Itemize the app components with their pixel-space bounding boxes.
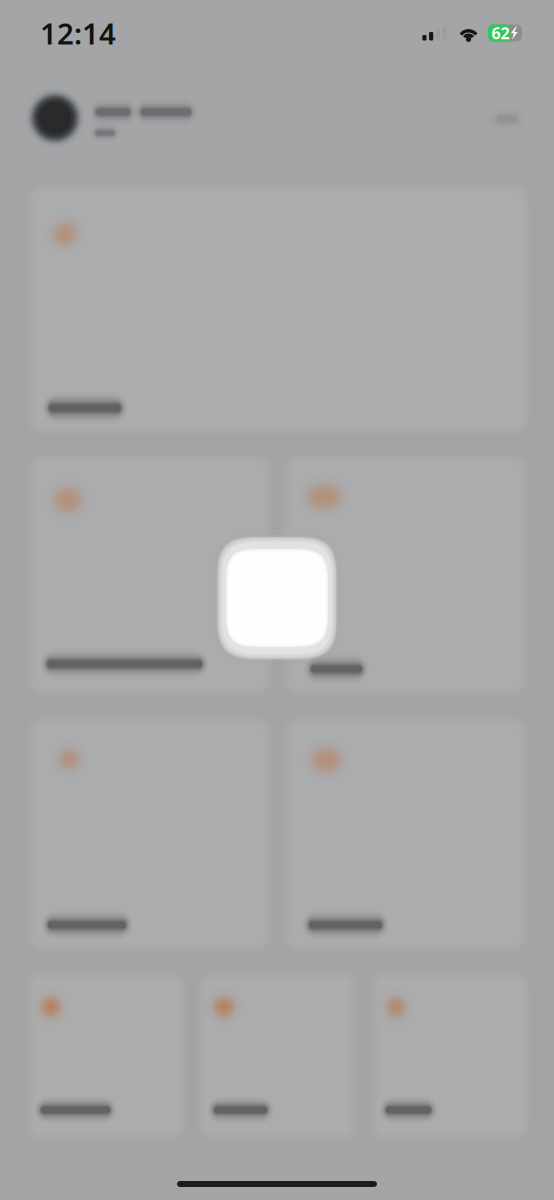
button[interactable] xyxy=(26,184,530,435)
button[interactable] xyxy=(26,454,272,696)
button[interactable] xyxy=(26,971,186,1141)
staticText: 12:14 xyxy=(40,13,116,52)
button[interactable] xyxy=(10,76,220,160)
button[interactable] xyxy=(282,716,528,952)
button[interactable]: More xyxy=(480,96,534,142)
button[interactable] xyxy=(282,454,528,696)
button[interactable] xyxy=(370,971,530,1141)
button[interactable] xyxy=(26,716,272,952)
button[interactable] xyxy=(198,971,358,1141)
staticText: 62 xyxy=(491,22,509,44)
